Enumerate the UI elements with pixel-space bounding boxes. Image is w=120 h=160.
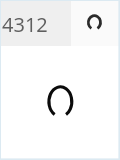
button[interactable]: Refresh [71,1,120,46]
staticText: 4312 [2,11,48,38]
button[interactable]: 4312 [1,1,71,46]
